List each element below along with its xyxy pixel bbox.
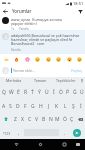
button[interactable]: C [26,112,33,126]
staticText: Ü [80,89,84,96]
staticText: . [64,130,66,136]
button[interactable]: Face emoji [65,55,73,63]
staticText: N [49,116,53,123]
button[interactable]: Teşekkürler [53,77,79,84]
staticText: 2 [11,87,13,90]
staticText: Teşekkürler [56,78,76,83]
button[interactable]: B [40,112,47,126]
button[interactable]: N [47,112,54,126]
button[interactable]: Voice input [79,77,85,84]
button[interactable]: www_aysse Kumaşıya sonunu yapıyor elekti… [0,15,85,30]
staticText: 5 [32,87,34,90]
staticText: Yorumlar [12,8,32,14]
staticText: P [66,89,70,96]
staticText: K [55,103,59,110]
button[interactable]: 2 [8,84,15,98]
staticText: Ş [72,103,75,110]
button[interactable]: S [7,98,14,112]
button[interactable]: 9 [57,84,64,98]
button[interactable]: Crown emoji [2,55,10,63]
button[interactable]: Z [11,112,19,126]
button[interactable]: Ş [69,98,77,112]
button[interactable]: G [29,98,37,112]
button[interactable]: Face emoji [44,55,52,63]
button[interactable]: 5 [29,84,36,98]
button[interactable]: Filter [76,7,84,15]
button[interactable]: Back [1,7,9,15]
staticText: Q [2,89,6,96]
button[interactable]: 0 [64,84,71,98]
staticText: B [42,116,46,123]
button[interactable]: Merhaba [0,77,27,84]
staticText: www_aysse Kumaşıya sonunu yapıyor elekti… [11,17,63,26]
staticText: F [24,103,27,110]
staticText: C [28,116,32,123]
button[interactable]: Blossom emoji [23,55,31,63]
staticText: 4 [25,87,27,90]
button[interactable]: 1 [0,84,8,98]
button[interactable]: 6 [36,84,43,98]
staticText: L [64,103,67,110]
button[interactable]: Shift [0,112,11,126]
button[interactable]: Switch keyboard [73,140,82,149]
staticText: 18:51 [73,1,84,6]
button[interactable]: adalpsh666 Bonuslusul ve çok hazırslnar … [0,30,85,54]
button[interactable]: Back [12,140,21,149]
button[interactable]: 7 [43,84,50,98]
button[interactable]: L [61,98,69,112]
button[interactable]: F [21,98,29,112]
staticText: Yorum ekle... [13,68,35,73]
staticText: Y [38,89,41,96]
staticText: E [17,89,20,96]
button[interactable]: A [0,98,7,112]
button[interactable]: M [54,112,61,126]
button[interactable]: Backspace [75,112,85,126]
staticText: , [18,130,20,136]
button[interactable]: ?123 [0,126,14,139]
button[interactable]: 3 [15,84,22,98]
staticText: ?123 [3,131,11,135]
staticText: Ğ [73,89,77,96]
staticText: R [24,89,28,96]
button[interactable]: D [14,98,21,112]
staticText: G [31,103,35,110]
button[interactable]: Ü [78,84,85,98]
staticText: W [9,89,14,96]
staticText: S [9,103,12,110]
button[interactable]: X [19,112,26,126]
button[interactable]: 4 [22,84,29,98]
button[interactable]: İ [77,98,85,112]
staticText: 0 [67,87,69,90]
staticText: D [16,103,20,110]
staticText: Ç [70,116,74,123]
button[interactable]: Home [36,140,45,149]
button[interactable]: . [60,126,69,139]
button[interactable]: Face emoji [33,55,41,63]
button[interactable]: Recents [60,140,69,149]
staticText: İ [80,103,82,110]
button[interactable]: Face emoji [75,55,83,63]
button[interactable]: Fire emoji [12,55,20,63]
staticText: 1 [3,87,5,90]
button[interactable]: V [33,112,40,126]
staticText: adalpsh666 Bonuslusul ve çok hazırslnar … [11,33,80,46]
button[interactable]: Send [69,126,85,139]
button[interactable]: K [53,98,61,112]
staticText: 9 [60,87,62,90]
staticText: Yanıtla [11,48,21,52]
button[interactable]: 8 [50,84,57,98]
button[interactable]: J [45,98,53,112]
button[interactable]: , [14,126,23,139]
staticText: Tamam [34,78,47,83]
button[interactable]: Paylaş [70,67,83,74]
staticText: X [21,116,24,123]
button[interactable]: Face emoji [54,55,62,63]
button[interactable]: Ç [68,112,75,126]
button[interactable]: Tamam [27,77,53,84]
staticText: I [53,89,55,96]
button[interactable]: Ö [61,112,68,126]
button[interactable]: Ğ [71,84,78,98]
button[interactable]: H [37,98,45,112]
staticText: O [59,89,63,96]
